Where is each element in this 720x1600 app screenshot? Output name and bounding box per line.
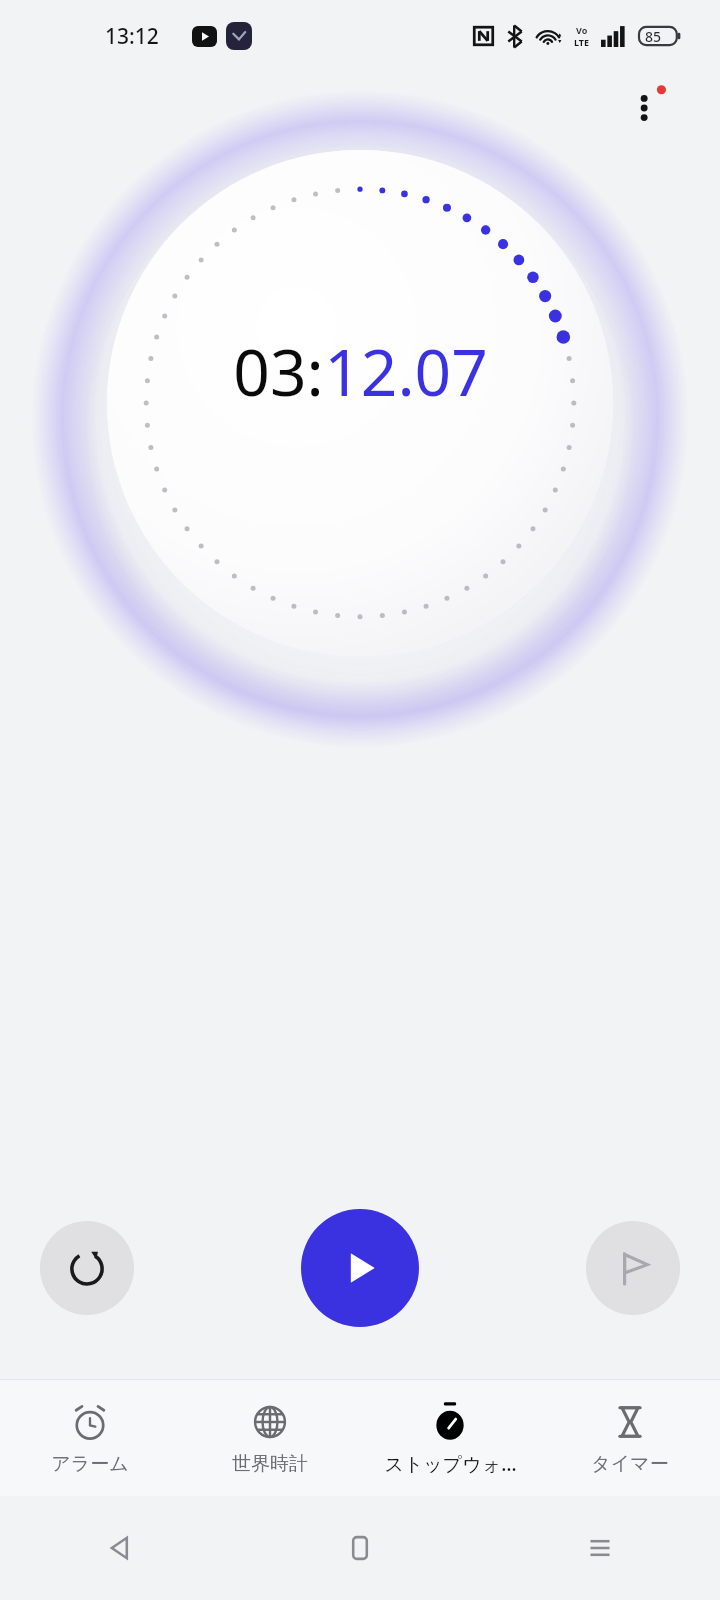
button[interactable]: Back — [0, 1496, 240, 1600]
staticText: 世界時計 — [232, 1452, 308, 1476]
staticText: ストップウォ… — [384, 1451, 517, 1477]
button[interactable]: 世界時計 — [180, 1393, 360, 1484]
staticText: タイマー — [591, 1452, 669, 1476]
staticText: アラーム — [51, 1452, 129, 1476]
staticText: Vo — [576, 24, 588, 36]
button[interactable]: Lap — [586, 1221, 680, 1315]
button[interactable]: Recent apps — [480, 1496, 720, 1600]
button[interactable]: タイマー — [540, 1393, 720, 1484]
button[interactable]: ストップウォ… — [360, 1392, 540, 1485]
staticText: 85 — [645, 27, 662, 46]
button[interactable]: Home — [240, 1496, 480, 1600]
button[interactable]: アラーム — [0, 1393, 180, 1484]
staticText: 03: — [233, 328, 324, 415]
staticText: 13:12 — [105, 22, 159, 51]
staticText: LTE — [574, 36, 590, 48]
button[interactable]: More options — [624, 84, 672, 132]
staticText: 12.07 — [324, 328, 488, 415]
button[interactable]: Start — [301, 1209, 419, 1327]
button[interactable]: Reset — [40, 1221, 134, 1315]
